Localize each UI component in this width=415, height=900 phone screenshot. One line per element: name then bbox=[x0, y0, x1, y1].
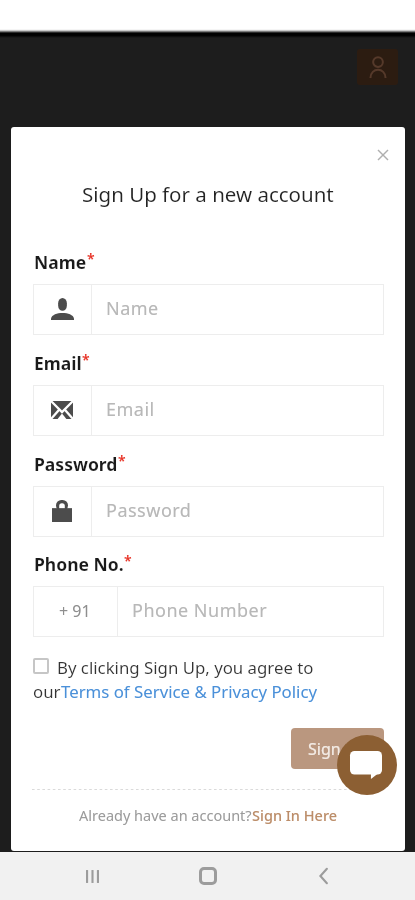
staticText: * bbox=[82, 350, 90, 369]
staticText: * bbox=[118, 451, 126, 470]
button[interactable]: Home bbox=[190, 852, 226, 900]
staticText: our bbox=[33, 680, 61, 703]
button[interactable]: Agree to terms bbox=[33, 658, 49, 674]
staticText: Phone No. bbox=[34, 552, 124, 576]
staticText: Email bbox=[106, 397, 155, 422]
button[interactable]: Chat bbox=[337, 735, 397, 795]
staticText: Phone Number bbox=[132, 598, 268, 623]
staticText: Password bbox=[106, 498, 192, 523]
staticText: Already have an account? bbox=[79, 805, 252, 825]
button[interactable]: Sign Up bbox=[291, 728, 384, 769]
staticText: * bbox=[124, 551, 132, 570]
staticText: + 91 bbox=[59, 600, 91, 622]
button[interactable]: Terms of Service & Privacy Policy bbox=[61, 680, 318, 703]
staticText: Name bbox=[106, 296, 159, 321]
staticText: * bbox=[87, 249, 95, 268]
staticText: Email bbox=[34, 351, 82, 375]
staticText: By clicking Sign Up, you agree to bbox=[57, 656, 314, 679]
button[interactable]: Password bbox=[33, 486, 384, 537]
button[interactable]: Back bbox=[306, 852, 342, 900]
button[interactable]: Name bbox=[33, 284, 384, 335]
button[interactable]: Email bbox=[33, 385, 384, 436]
button[interactable]: Recent apps bbox=[74, 852, 110, 900]
button[interactable]: Account bbox=[357, 49, 398, 85]
staticText: Sign Up for a new account bbox=[82, 180, 334, 208]
button[interactable]: Close bbox=[371, 143, 395, 167]
staticText: Password bbox=[34, 452, 118, 476]
button[interactable]: + 91 bbox=[33, 586, 384, 637]
staticText: Sign Up bbox=[308, 738, 367, 760]
staticText: Name bbox=[34, 250, 87, 274]
button[interactable]: Sign In Here bbox=[252, 805, 338, 825]
